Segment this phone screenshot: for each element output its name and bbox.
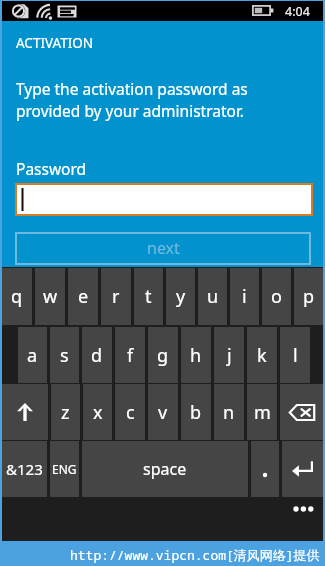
- staticText: c: [126, 400, 135, 425]
- staticText: d: [91, 343, 103, 368]
- staticText: u: [207, 284, 219, 309]
- button[interactable]: Enter: [282, 441, 323, 497]
- button[interactable]: x: [83, 384, 112, 440]
- staticText: g: [157, 343, 169, 368]
- staticText: f: [127, 343, 134, 368]
- button[interactable]: b: [181, 384, 211, 440]
- button[interactable]: i: [230, 268, 259, 325]
- button[interactable]: y: [166, 268, 195, 325]
- button[interactable]: j: [214, 327, 244, 383]
- staticText: space: [143, 458, 187, 480]
- staticText: i: [242, 284, 247, 309]
- staticText: a: [27, 343, 38, 368]
- button[interactable]: Backspace: [280, 384, 323, 440]
- button[interactable]: v: [148, 384, 178, 440]
- staticText: y: [176, 284, 186, 309]
- staticText: http://www.vipcn.com[清风网络]提供: [70, 546, 320, 564]
- staticText: 4:04: [285, 3, 310, 20]
- button[interactable]: More options: [284, 497, 323, 523]
- button[interactable]: k: [247, 327, 277, 383]
- staticText: m: [254, 400, 271, 425]
- button[interactable]: q: [2, 268, 32, 325]
- staticText: t: [145, 284, 152, 309]
- button[interactable]: n: [214, 384, 244, 440]
- staticText: v: [158, 400, 168, 425]
- staticText: w: [43, 284, 58, 309]
- button[interactable]: r: [101, 268, 131, 325]
- staticText: &123: [6, 459, 43, 479]
- staticText: ENG: [52, 461, 77, 477]
- staticText: r: [112, 284, 120, 309]
- staticText: Password: [16, 158, 87, 179]
- staticText: x: [93, 400, 103, 425]
- button[interactable]: u: [198, 268, 227, 325]
- staticText: p: [303, 284, 315, 309]
- staticText: h: [190, 343, 202, 368]
- button[interactable]: s: [50, 327, 79, 383]
- staticText: s: [60, 343, 69, 368]
- staticText: j: [227, 343, 232, 368]
- staticText: Type the activation password as provided…: [16, 78, 248, 121]
- staticText: z: [61, 400, 70, 425]
- button[interactable]: ENG: [50, 441, 79, 497]
- button[interactable]: d: [82, 327, 112, 383]
- button[interactable]: g: [148, 327, 178, 383]
- button[interactable]: o: [262, 268, 291, 325]
- button[interactable]: p: [294, 268, 323, 325]
- staticText: e: [78, 284, 89, 309]
- button[interactable]: next: [15, 232, 311, 265]
- button[interactable]: h: [181, 327, 211, 383]
- button[interactable]: e: [68, 268, 98, 325]
- staticText: b: [190, 400, 202, 425]
- staticText: o: [271, 284, 282, 309]
- button[interactable]: f: [115, 327, 145, 383]
- staticText: q: [11, 284, 23, 309]
- button[interactable]: Period: [251, 441, 279, 497]
- button[interactable]: a: [18, 327, 47, 383]
- staticText: next: [147, 237, 180, 259]
- button[interactable]: w: [35, 268, 65, 325]
- staticText: k: [257, 343, 267, 368]
- button[interactable]: space: [82, 441, 248, 497]
- button[interactable]: m: [247, 384, 277, 440]
- button[interactable]: t: [134, 268, 163, 325]
- staticText: n: [223, 400, 235, 425]
- staticText: ACTIVATION: [16, 34, 94, 52]
- button[interactable]: &123: [2, 441, 47, 497]
- button[interactable]: z: [51, 384, 80, 440]
- button[interactable]: l: [280, 327, 310, 383]
- staticText: l: [293, 343, 298, 368]
- button[interactable]: c: [115, 384, 145, 440]
- button[interactable]: Password input: [15, 183, 313, 216]
- button[interactable]: Shift: [2, 384, 48, 440]
